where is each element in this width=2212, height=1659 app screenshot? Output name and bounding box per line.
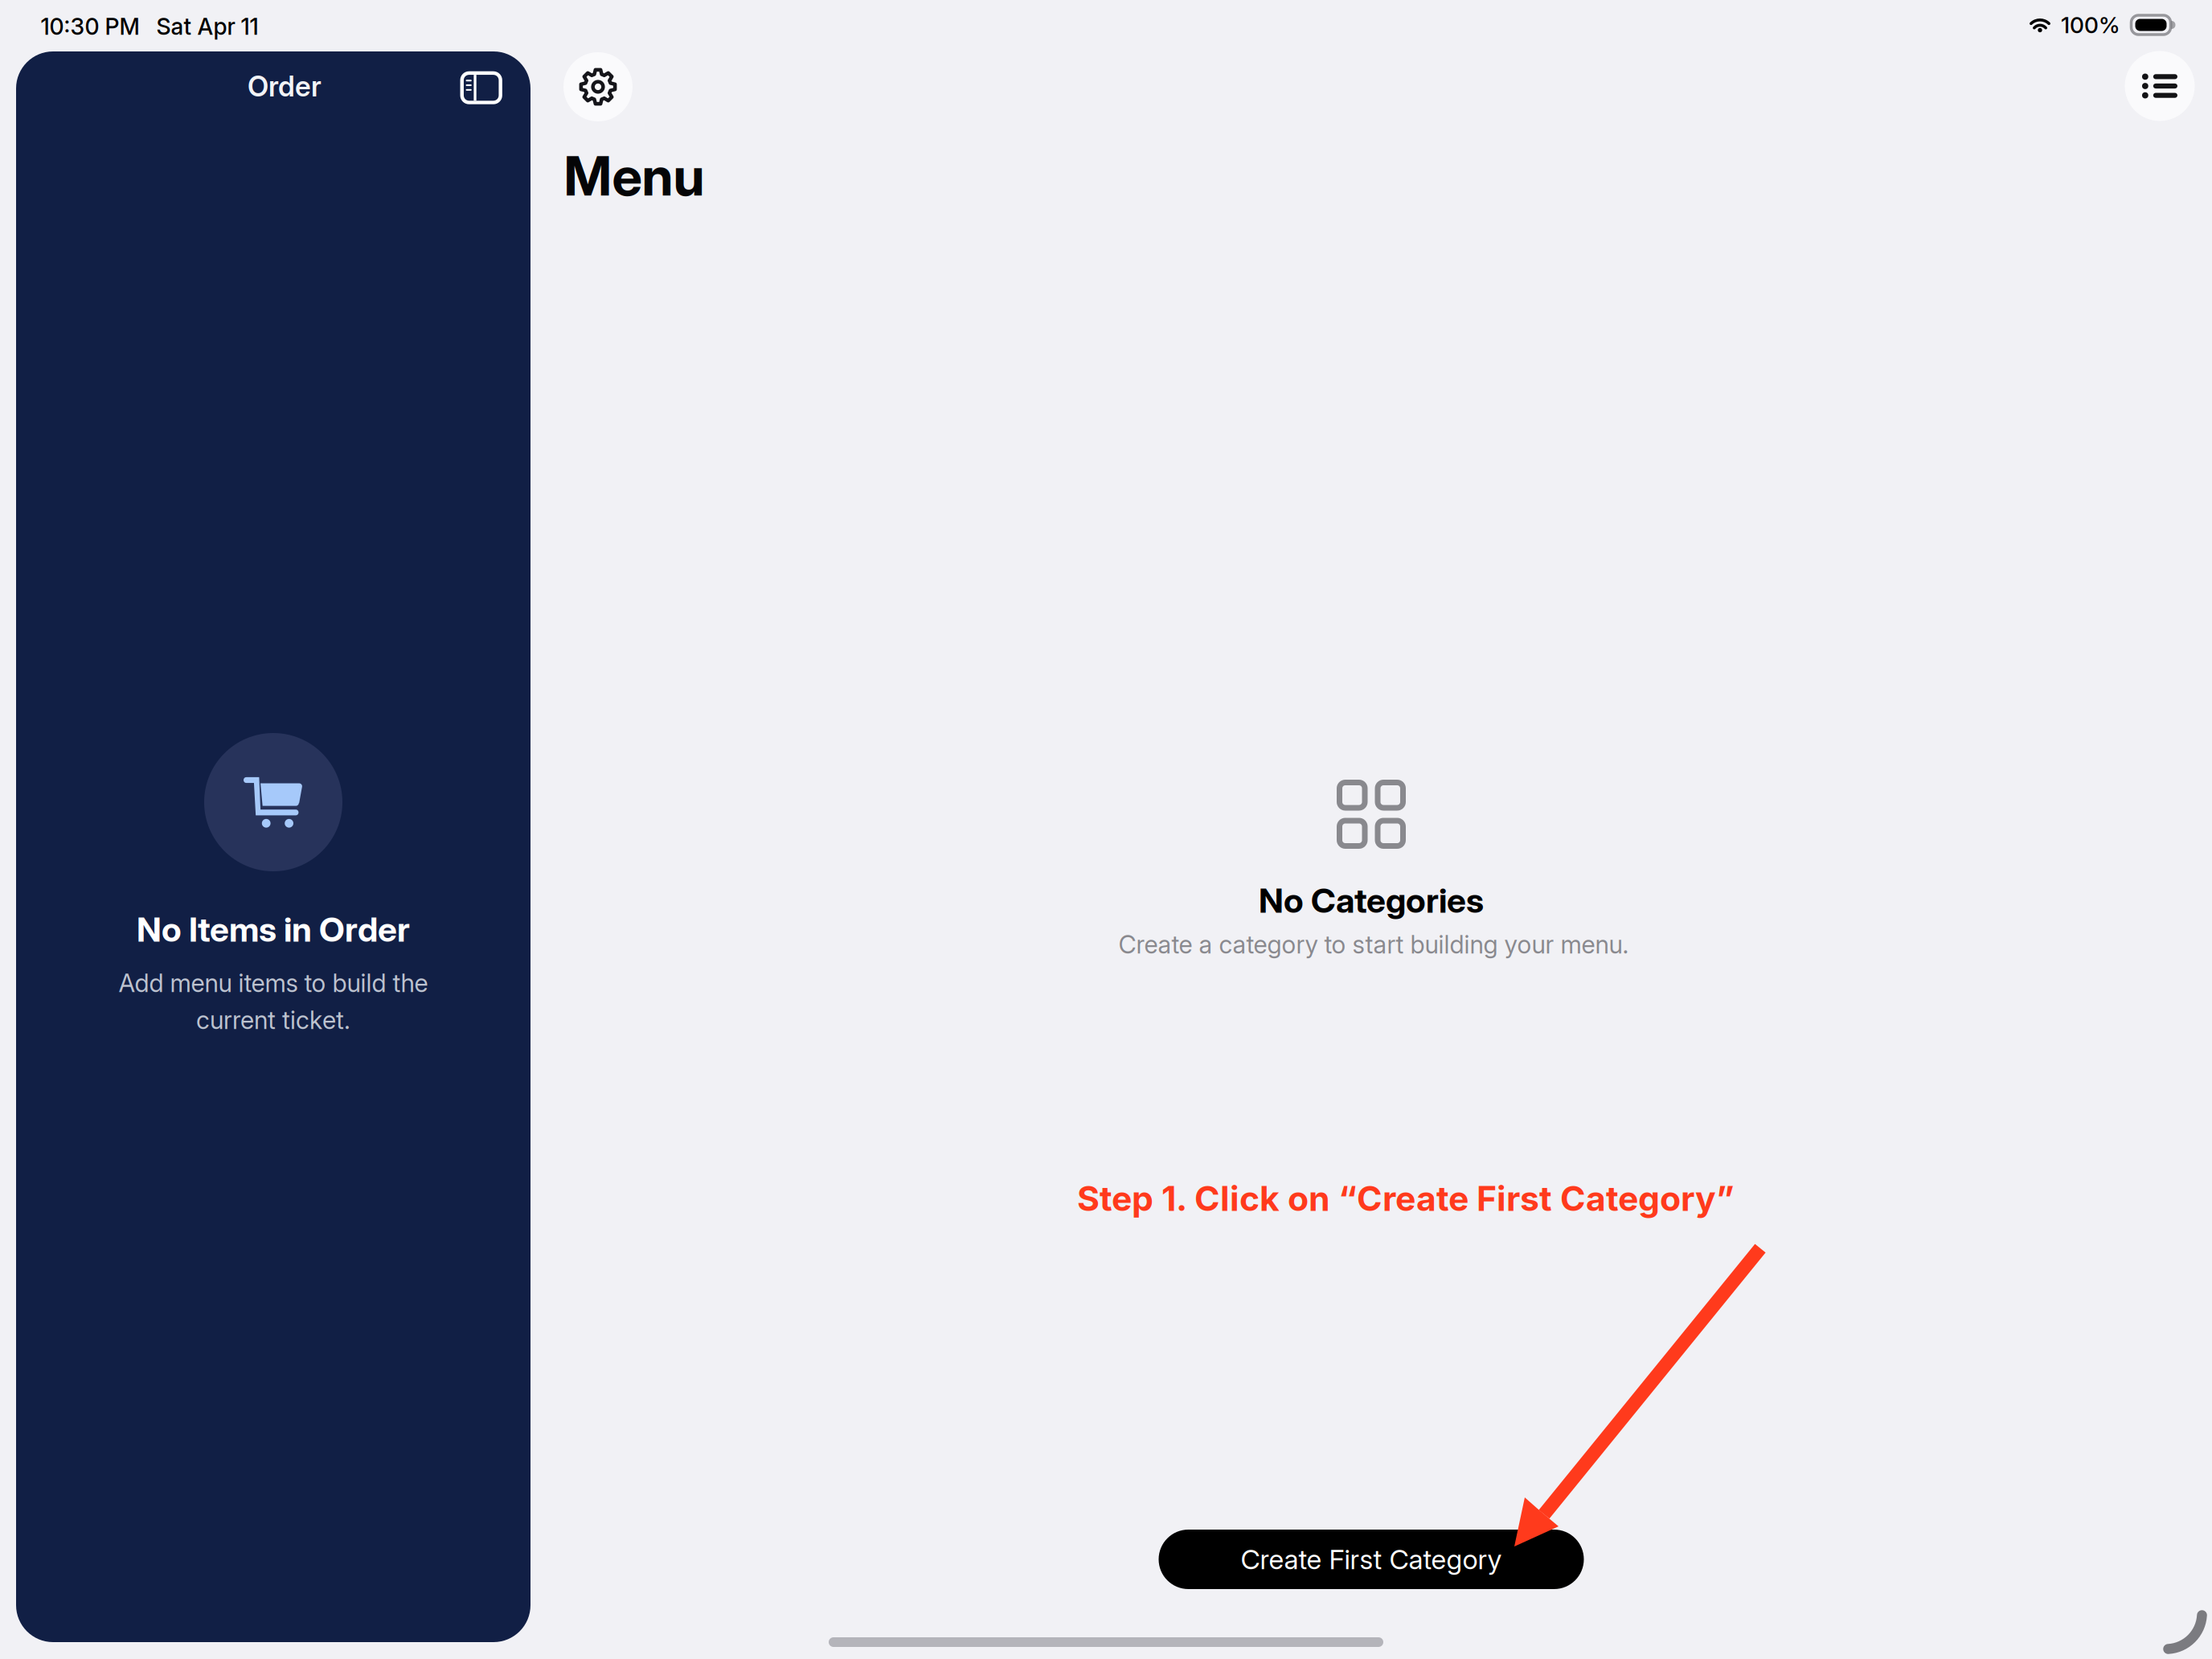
staticText: No Categories [1259, 880, 1484, 921]
button[interactable]: Create First Category [1159, 1530, 1584, 1589]
staticText: 100% [2061, 11, 2120, 39]
staticText: Menu [564, 144, 705, 209]
staticText: 10:30 PM Sat Apr 11 [41, 13, 258, 40]
staticText: No Items in Order [137, 909, 410, 950]
staticText: Step 1. Click on “Create First Category” [1077, 1178, 1735, 1219]
staticText: Order [248, 70, 322, 103]
button[interactable]: Hide Sidebar [442, 53, 517, 119]
staticText: Create a category to start building your… [1118, 929, 1629, 959]
staticText: current ticket. [196, 1005, 350, 1035]
button[interactable]: Menu Options [2125, 51, 2195, 121]
staticText: Add menu items to build the [119, 968, 428, 998]
button[interactable]: Settings [563, 52, 633, 121]
staticText: Create First Category [1241, 1543, 1502, 1576]
